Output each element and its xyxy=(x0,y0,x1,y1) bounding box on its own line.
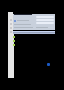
button[interactable]: Accent xyxy=(47,63,50,66)
button[interactable] xyxy=(14,20,35,23)
